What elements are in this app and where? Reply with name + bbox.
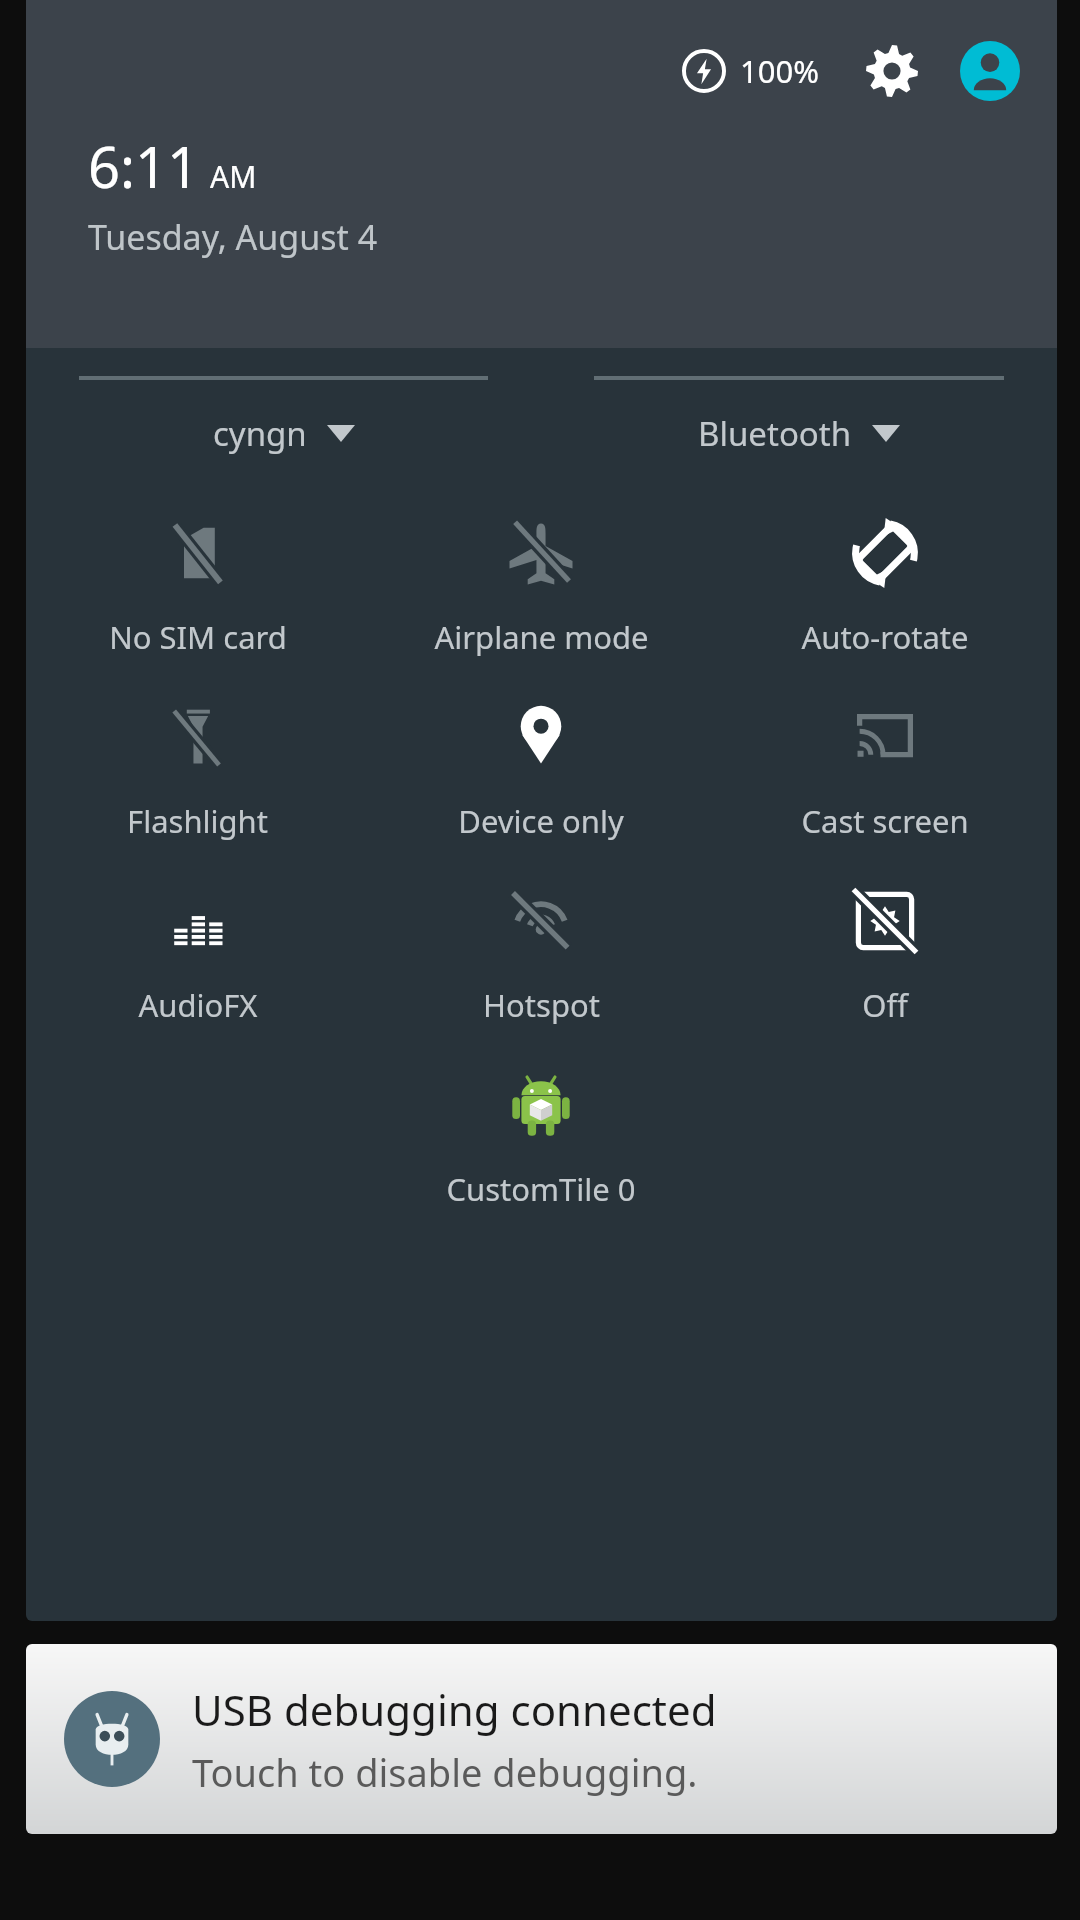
staticText: cyngn bbox=[213, 411, 307, 456]
staticText: AudioFX bbox=[138, 984, 258, 1026]
staticText: USB debugging connected bbox=[192, 1681, 717, 1738]
button[interactable]: User profile bbox=[959, 40, 1021, 102]
staticText: Device only bbox=[458, 800, 624, 842]
button[interactable]: USB debugging connected bbox=[26, 1644, 1057, 1834]
staticText: CustomTile 0 bbox=[446, 1168, 636, 1210]
staticText: Bluetooth bbox=[698, 411, 852, 456]
button[interactable]: Flashlight bbox=[26, 702, 369, 842]
button[interactable]: cyngn bbox=[26, 376, 541, 456]
button[interactable]: Bluetooth bbox=[541, 376, 1057, 456]
button[interactable]: Off bbox=[713, 886, 1057, 1026]
button[interactable]: Device only bbox=[369, 702, 713, 842]
staticText: Flashlight bbox=[127, 800, 268, 842]
button[interactable]: AudioFX bbox=[26, 886, 369, 1026]
staticText: No SIM card bbox=[109, 616, 287, 658]
button[interactable]: Settings bbox=[861, 40, 923, 102]
button[interactable]: CustomTile 0 bbox=[369, 1070, 713, 1210]
staticText: Cast screen bbox=[801, 800, 969, 842]
button[interactable]: No SIM card bbox=[26, 518, 369, 658]
staticText: 6:11 bbox=[88, 128, 200, 204]
staticText: 100% bbox=[740, 50, 819, 92]
staticText: Hotspot bbox=[483, 984, 600, 1026]
staticText: AM bbox=[210, 156, 257, 197]
button[interactable]: Auto-rotate bbox=[713, 518, 1057, 658]
button[interactable]: Hotspot bbox=[369, 886, 713, 1026]
staticText: Off bbox=[862, 984, 908, 1026]
button[interactable]: Airplane mode bbox=[369, 518, 713, 658]
button[interactable]: Cast screen bbox=[713, 702, 1057, 842]
staticText: Auto-rotate bbox=[801, 616, 969, 658]
staticText: Airplane mode bbox=[434, 616, 649, 658]
staticText: Touch to disable debugging. bbox=[192, 1746, 698, 1798]
staticText: Tuesday, August 4 bbox=[88, 214, 378, 260]
